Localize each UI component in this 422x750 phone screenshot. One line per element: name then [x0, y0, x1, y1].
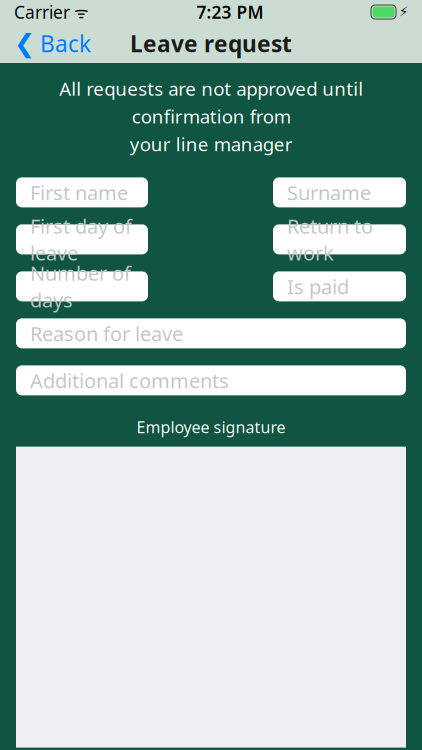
staticText: ❮: [14, 29, 35, 58]
staticText: Employee signature: [136, 416, 285, 438]
staticText: Leave request: [130, 28, 292, 58]
staticText: 7:23 PM: [196, 0, 263, 23]
staticText: Carrier: [14, 0, 70, 23]
staticText: Number of days: [30, 260, 131, 313]
button[interactable]: ❮: [0, 24, 105, 63]
staticText: Back: [40, 28, 91, 58]
staticText: All requests are not approved until conf…: [59, 76, 363, 156]
staticText: ⚡︎: [399, 4, 408, 19]
staticText: ᯤ: [70, 1, 89, 23]
staticText: First name: [30, 179, 128, 206]
staticText: Return to work: [287, 213, 373, 266]
staticText: Reason for leave: [30, 320, 183, 347]
staticText: Is paid: [287, 273, 349, 300]
staticText: First day of leave: [30, 213, 132, 266]
staticText: Additional comments: [30, 367, 229, 394]
staticText: Surname: [287, 179, 371, 206]
